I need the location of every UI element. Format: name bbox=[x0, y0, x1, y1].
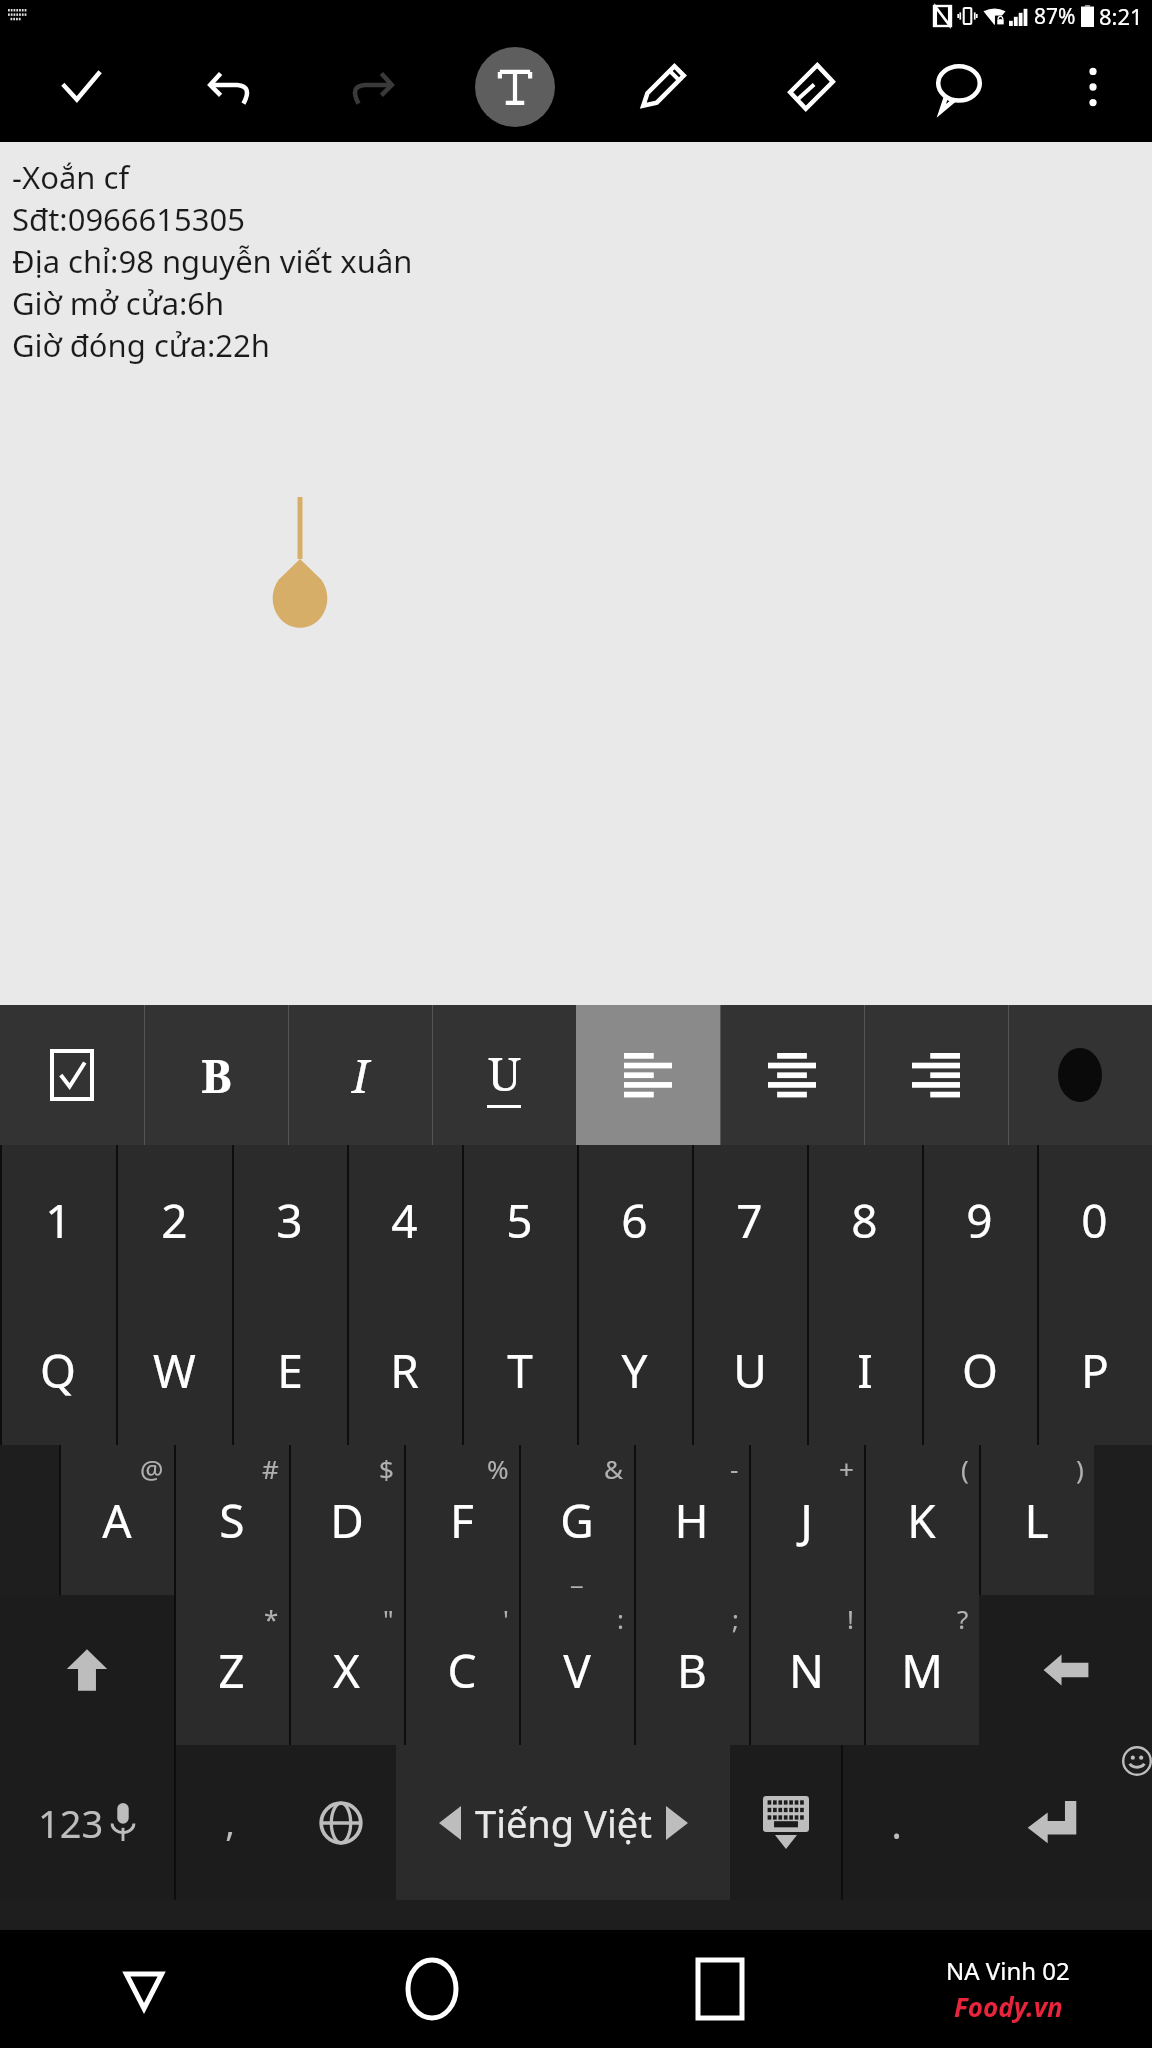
staticText: $ bbox=[379, 1451, 394, 1486]
button[interactable]: I bbox=[807, 1295, 922, 1445]
button[interactable]: 0 bbox=[1037, 1145, 1152, 1295]
button[interactable]: Enter bbox=[952, 1745, 1152, 1900]
staticText: N bbox=[789, 1639, 824, 1702]
button[interactable]: R bbox=[347, 1295, 462, 1445]
button[interactable]: L bbox=[979, 1445, 1094, 1595]
button[interactable]: Align right bbox=[864, 1005, 1008, 1145]
button[interactable]: M bbox=[864, 1595, 979, 1745]
button[interactable]: C bbox=[404, 1595, 519, 1745]
button[interactable]: Bold bbox=[144, 1005, 288, 1145]
button[interactable]: 3 bbox=[232, 1145, 347, 1295]
staticText: Giờ mở cửa:6h bbox=[12, 282, 225, 324]
button[interactable]: T bbox=[462, 1295, 577, 1445]
button[interactable]: H bbox=[634, 1445, 749, 1595]
staticText: 87% bbox=[1034, 2, 1076, 31]
staticText: ; bbox=[732, 1601, 739, 1636]
button[interactable]: Back bbox=[0, 1930, 288, 2048]
staticText: 9 bbox=[966, 1189, 993, 1252]
staticText: , bbox=[225, 1798, 235, 1847]
button[interactable]: G bbox=[519, 1445, 634, 1595]
staticText: -Xoắn cf bbox=[12, 156, 130, 198]
button[interactable]: 2 bbox=[116, 1145, 232, 1295]
staticText: Sđt:0966615305 bbox=[12, 198, 245, 240]
button[interactable]: Hide keyboard bbox=[730, 1745, 841, 1900]
staticText: % bbox=[487, 1451, 509, 1486]
button[interactable]: Checklist bbox=[0, 1005, 144, 1145]
staticText: B bbox=[677, 1639, 707, 1702]
button[interactable]: P bbox=[1037, 1295, 1152, 1445]
button[interactable]: E bbox=[232, 1295, 347, 1445]
button[interactable]: Align center bbox=[720, 1005, 864, 1145]
button[interactable]: F bbox=[404, 1445, 519, 1595]
button[interactable]: , bbox=[174, 1745, 285, 1900]
button[interactable]: Numbers and voice input bbox=[0, 1745, 174, 1900]
staticText: W bbox=[153, 1339, 196, 1402]
staticText: 3 bbox=[276, 1189, 303, 1252]
button[interactable]: Text colour bbox=[1008, 1005, 1152, 1145]
button[interactable]: Comment bbox=[885, 32, 1033, 142]
button[interactable]: Underline bbox=[432, 1005, 576, 1145]
button[interactable]: Z bbox=[174, 1595, 289, 1745]
button[interactable]: Redo bbox=[301, 32, 441, 142]
button[interactable]: Shift bbox=[0, 1595, 174, 1745]
button[interactable]: Done bbox=[0, 32, 161, 142]
staticText: " bbox=[383, 1601, 394, 1636]
button[interactable]: X bbox=[289, 1595, 404, 1745]
staticText: B bbox=[201, 1044, 232, 1107]
staticText: @ bbox=[140, 1451, 164, 1486]
button[interactable]: Text tool bbox=[441, 32, 589, 142]
staticText: ( bbox=[961, 1451, 969, 1486]
button[interactable]: Recent apps bbox=[576, 1930, 864, 2048]
button[interactable]: 4 bbox=[347, 1145, 462, 1295]
button[interactable]: Italic bbox=[288, 1005, 432, 1145]
staticText: I bbox=[857, 1339, 873, 1402]
button[interactable]: Q bbox=[0, 1295, 116, 1445]
button[interactable]: Change language bbox=[285, 1745, 396, 1900]
button[interactable]: 8 bbox=[807, 1145, 922, 1295]
staticText: G bbox=[560, 1489, 594, 1552]
button[interactable]: 7 bbox=[692, 1145, 807, 1295]
staticText: _ bbox=[571, 1556, 583, 1591]
staticText: + bbox=[839, 1451, 854, 1486]
button[interactable]: V bbox=[519, 1595, 634, 1745]
button[interactable]: Tiếng Việt bbox=[396, 1745, 730, 1900]
staticText: 8:21 bbox=[1099, 1, 1143, 31]
staticText: Giờ đóng cửa:22h bbox=[12, 324, 270, 366]
staticText: Y bbox=[621, 1339, 648, 1402]
button[interactable]: N bbox=[749, 1595, 864, 1745]
button[interactable]: 6 bbox=[577, 1145, 692, 1295]
button[interactable]: . bbox=[841, 1745, 952, 1900]
staticText: A bbox=[102, 1489, 132, 1552]
staticText: ) bbox=[1076, 1451, 1084, 1486]
button[interactable]: Backspace bbox=[979, 1595, 1152, 1745]
button[interactable]: B bbox=[634, 1595, 749, 1745]
staticText: * bbox=[264, 1601, 279, 1636]
button[interactable]: Align left bbox=[576, 1005, 720, 1145]
button[interactable]: S bbox=[174, 1445, 289, 1595]
button[interactable]: Eraser bbox=[737, 32, 885, 142]
staticText: K bbox=[907, 1489, 936, 1552]
staticText: 8 bbox=[851, 1189, 878, 1252]
button[interactable]: Home bbox=[288, 1930, 576, 2048]
button[interactable]: Undo bbox=[161, 32, 301, 142]
button[interactable]: W bbox=[116, 1295, 232, 1445]
button[interactable]: More options bbox=[1033, 32, 1152, 142]
staticText: J bbox=[800, 1489, 813, 1552]
button[interactable]: 9 bbox=[922, 1145, 1037, 1295]
button[interactable]: 1 bbox=[0, 1145, 116, 1295]
button[interactable]: Y bbox=[577, 1295, 692, 1445]
button[interactable]: U bbox=[692, 1295, 807, 1445]
button[interactable]: J bbox=[749, 1445, 864, 1595]
button[interactable]: A bbox=[59, 1445, 174, 1595]
staticText: ' bbox=[503, 1601, 509, 1636]
button[interactable]: K bbox=[864, 1445, 979, 1595]
staticText: Tiếng Việt bbox=[475, 1797, 652, 1849]
staticText: ! bbox=[847, 1601, 854, 1636]
button[interactable]: 5 bbox=[462, 1145, 577, 1295]
staticText: T bbox=[507, 1339, 533, 1402]
staticText: X bbox=[333, 1639, 360, 1702]
staticText: S bbox=[219, 1489, 245, 1552]
button[interactable]: Pen bbox=[589, 32, 737, 142]
button[interactable]: O bbox=[922, 1295, 1037, 1445]
button[interactable]: D bbox=[289, 1445, 404, 1595]
